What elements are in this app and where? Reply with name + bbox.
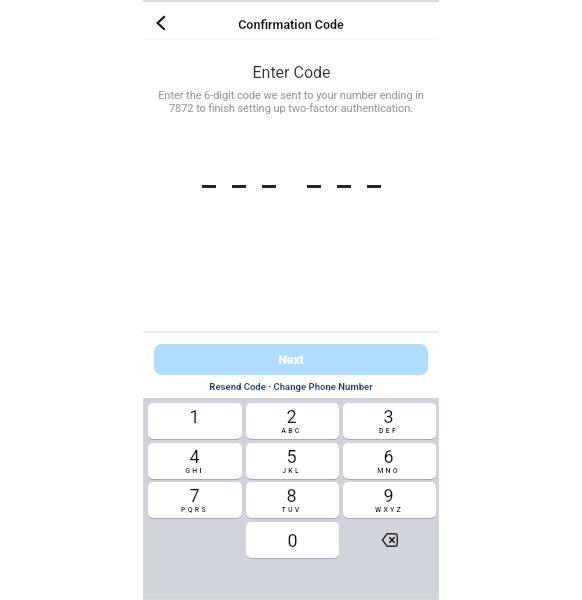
button[interactable]: 1 — [148, 403, 242, 439]
staticText: 9 — [383, 485, 394, 506]
staticText: JKL — [282, 467, 301, 475]
staticText: Enter the 6-digit code we sent to your n… — [151, 89, 431, 114]
staticText: 7 — [189, 485, 200, 506]
staticText: 4 — [189, 446, 200, 467]
staticText: MNO — [377, 467, 400, 475]
staticText: 6 — [383, 446, 394, 467]
staticText: Confirmation Code — [238, 17, 344, 32]
button[interactable]: 0 — [246, 522, 339, 558]
button[interactable]: 5 — [246, 443, 339, 479]
button[interactable]: 3 — [343, 403, 436, 439]
button[interactable]: 4 — [148, 443, 242, 479]
button[interactable]: 6 — [343, 443, 436, 479]
staticText: 8 — [286, 485, 297, 506]
staticText: Next — [278, 353, 304, 367]
staticText: ABC — [281, 427, 302, 435]
staticText: 5 — [286, 446, 297, 467]
staticText: 0 — [287, 530, 298, 551]
staticText: WXYZ — [375, 506, 403, 514]
button[interactable]: 7 — [148, 482, 242, 518]
button[interactable]: 9 — [343, 482, 436, 518]
staticText: 3 — [383, 406, 394, 427]
staticText: PQRS — [181, 506, 208, 514]
button[interactable]: Delete — [343, 522, 436, 558]
staticText: 1 — [189, 406, 200, 427]
button[interactable]: 8 — [246, 482, 339, 518]
button[interactable]: Next — [154, 344, 428, 375]
staticText: GHI — [185, 467, 204, 475]
button[interactable]: 2 — [246, 403, 339, 439]
staticText: 2 — [286, 406, 297, 427]
button[interactable]: Resend Code · Change Phone Number — [143, 379, 439, 393]
staticText: Resend Code · Change Phone Number — [209, 381, 373, 392]
staticText: DEF — [379, 427, 398, 435]
button[interactable]: Back — [146, 8, 176, 38]
staticText: Enter Code — [252, 63, 331, 82]
staticText: TUV — [281, 506, 302, 514]
